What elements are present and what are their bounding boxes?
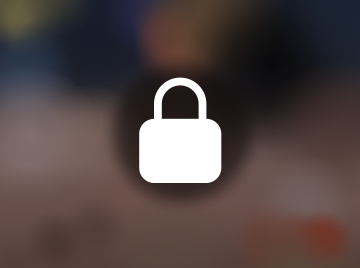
button[interactable]: Unlock xyxy=(0,0,360,268)
